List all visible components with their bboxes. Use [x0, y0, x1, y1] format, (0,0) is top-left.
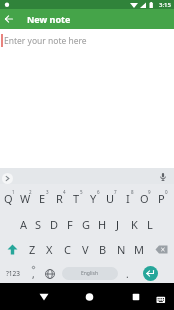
staticText: S	[35, 217, 42, 232]
staticText: R	[56, 191, 63, 206]
staticText: 2	[29, 189, 32, 195]
staticText: A	[20, 217, 28, 232]
staticText: U	[106, 191, 115, 206]
staticText: E	[39, 191, 46, 206]
button[interactable]: B	[94, 237, 112, 262]
button[interactable]: X	[41, 237, 58, 262]
staticText: Y	[90, 191, 97, 206]
staticText: 3:15	[159, 1, 171, 9]
staticText: Z	[29, 242, 36, 257]
button[interactable]: I	[119, 186, 136, 210]
staticText: P	[158, 191, 165, 206]
button[interactable]	[41, 261, 59, 286]
button[interactable]	[116, 283, 174, 310]
staticText: W	[20, 191, 31, 206]
staticText: I	[126, 191, 130, 206]
staticText: J	[116, 217, 120, 232]
button[interactable]	[0, 283, 58, 310]
staticText: M	[134, 242, 144, 257]
button[interactable]: D	[46, 212, 62, 237]
staticText: 1	[12, 189, 15, 195]
button[interactable]: Z	[24, 237, 41, 262]
button[interactable]: M	[130, 237, 148, 262]
button[interactable]: A	[16, 212, 31, 237]
button[interactable]	[143, 266, 158, 281]
button[interactable]: H	[94, 212, 110, 237]
staticText: T	[73, 191, 80, 206]
staticText: 3	[46, 189, 49, 195]
button[interactable]: English	[62, 261, 118, 286]
button[interactable]: C	[58, 237, 76, 262]
button[interactable]	[2, 173, 13, 184]
staticText: F	[67, 217, 73, 232]
button[interactable]	[148, 237, 174, 262]
staticText: H	[98, 217, 107, 232]
staticText: 9	[148, 189, 151, 195]
button[interactable]: Q	[0, 186, 17, 210]
button[interactable]: J	[110, 212, 126, 237]
button[interactable]	[0, 10, 18, 28]
button[interactable]	[157, 171, 169, 183]
staticText: 4	[63, 189, 66, 195]
button[interactable]: .	[121, 261, 133, 286]
staticText: 6	[97, 189, 100, 195]
button[interactable]: O	[136, 186, 153, 210]
button[interactable]: ,	[26, 261, 41, 286]
button[interactable]: T	[68, 186, 85, 210]
staticText: L	[147, 217, 153, 232]
staticText: 7	[114, 189, 117, 195]
staticText: New note	[27, 13, 71, 25]
staticText: ?123	[6, 269, 20, 278]
button[interactable]: R	[51, 186, 68, 210]
staticText: 8	[131, 189, 134, 195]
button[interactable]: Y	[85, 186, 102, 210]
staticText: English	[81, 270, 99, 277]
staticText: B	[99, 242, 107, 257]
button[interactable]: K	[126, 212, 142, 237]
button[interactable]: N	[112, 237, 130, 262]
staticText: K	[131, 217, 138, 232]
staticText: D	[50, 217, 59, 232]
button[interactable]: ?123	[0, 261, 26, 286]
staticText: G	[82, 217, 91, 232]
button[interactable]: L	[142, 212, 158, 237]
staticText: 0	[165, 189, 168, 195]
staticText: Enter your note here	[4, 35, 87, 47]
staticText: O	[140, 191, 149, 206]
staticText: .	[126, 267, 129, 281]
staticText: N	[117, 242, 126, 257]
button[interactable]: S	[31, 212, 46, 237]
button[interactable]: F	[62, 212, 78, 237]
staticText: Q	[4, 191, 13, 206]
button[interactable]: P	[153, 186, 170, 210]
staticText: C	[64, 242, 71, 257]
button[interactable]: U	[102, 186, 119, 210]
button[interactable]: G	[78, 212, 94, 237]
staticText: X	[46, 242, 53, 257]
staticText: 5	[80, 189, 83, 195]
button[interactable]	[0, 237, 24, 262]
button[interactable]: E	[34, 186, 51, 210]
button[interactable]: Enter your note here	[0, 29, 174, 168]
staticText: ,	[32, 267, 35, 281]
button[interactable]: V	[76, 237, 94, 262]
staticText: V	[82, 242, 89, 257]
button[interactable]: W	[17, 186, 34, 210]
button[interactable]	[58, 283, 116, 310]
